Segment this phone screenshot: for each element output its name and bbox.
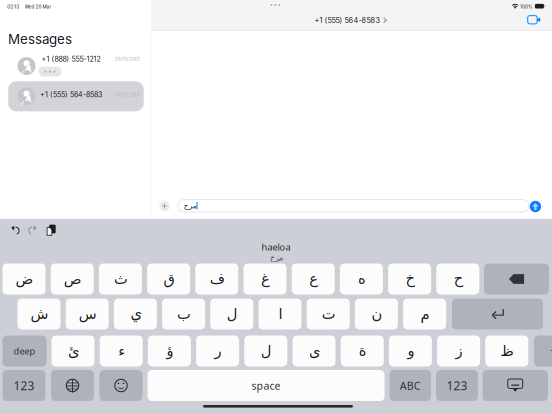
button[interactable]: ه xyxy=(340,263,383,294)
button[interactable]: ا xyxy=(258,298,301,329)
staticText: haeloa xyxy=(261,241,290,253)
staticText: 01/01/2001 xyxy=(115,56,140,62)
staticText: × xyxy=(515,270,522,286)
button[interactable]: ة xyxy=(341,335,384,366)
staticText: ر xyxy=(214,343,221,359)
button[interactable]: ع xyxy=(292,263,335,294)
staticText: 01/01/2001 xyxy=(115,91,140,98)
staticText: +1 (555) 564-8583 xyxy=(314,16,380,25)
button[interactable]: Paste xyxy=(47,225,56,236)
staticText: 100% xyxy=(520,4,533,10)
button[interactable]: ي xyxy=(114,298,157,329)
staticText: ن xyxy=(371,306,382,322)
button[interactable]: ت xyxy=(307,298,350,329)
staticText: س xyxy=(78,306,96,322)
staticText: ظ xyxy=(500,343,514,359)
button[interactable]: ز xyxy=(437,335,480,366)
staticText: مرح xyxy=(269,253,282,262)
staticText: ة xyxy=(358,343,366,359)
staticText: ه xyxy=(357,271,365,287)
button[interactable]: ل xyxy=(244,335,287,366)
staticText: ح xyxy=(453,271,462,287)
button[interactable]: ر xyxy=(196,335,239,366)
staticText: space xyxy=(251,378,280,393)
button[interactable]: ف xyxy=(195,263,238,294)
staticText: ل xyxy=(226,306,237,322)
button[interactable]: Numbers xyxy=(2,370,45,401)
button[interactable]: Send xyxy=(530,201,541,212)
staticText: +1 (888) 555-1212 xyxy=(41,55,100,63)
button[interactable]: Add attachment xyxy=(159,201,170,211)
staticText: م xyxy=(420,306,429,322)
staticText: ق xyxy=(163,271,174,287)
button[interactable]: Return xyxy=(452,298,543,329)
button[interactable]: space xyxy=(147,370,384,401)
button[interactable]: ؤ xyxy=(148,335,191,366)
staticText: Wed 20 Mar xyxy=(25,4,52,10)
staticText: ى xyxy=(308,343,319,359)
staticText: ص xyxy=(63,271,81,287)
staticText: ABC xyxy=(400,378,421,393)
button[interactable]: ث xyxy=(99,263,142,294)
button[interactable]: م xyxy=(403,298,446,329)
staticText: ز xyxy=(455,343,462,359)
staticText: ش xyxy=(30,306,48,322)
staticText: ت xyxy=(321,306,335,322)
button[interactable]: +1 (888) 555-1212 xyxy=(8,51,144,81)
button[interactable]: ظ xyxy=(485,335,528,366)
button[interactable]: ئ xyxy=(51,335,94,366)
staticText: ل xyxy=(260,343,271,359)
button[interactable]: Delete xyxy=(484,263,549,294)
staticText: ب xyxy=(177,306,191,322)
staticText: ض xyxy=(15,271,33,287)
button[interactable]: ب xyxy=(162,298,205,329)
button[interactable]: و xyxy=(389,335,432,366)
button[interactable]: ح xyxy=(436,263,479,294)
button[interactable]: FaceTime xyxy=(528,16,540,24)
staticText: ؤ xyxy=(166,343,173,359)
button[interactable]: غ xyxy=(243,263,286,294)
staticText: ئ xyxy=(67,343,78,359)
button[interactable]: Next keyboard xyxy=(51,370,94,401)
staticText: غ xyxy=(260,271,269,287)
button[interactable]: خ xyxy=(388,263,431,294)
button[interactable]: ش xyxy=(17,298,60,329)
button[interactable]: مرح xyxy=(178,200,529,212)
staticText: Messages xyxy=(8,31,72,47)
button[interactable]: Redo xyxy=(28,226,38,235)
staticText: deep xyxy=(13,345,35,357)
staticText: مرح xyxy=(183,201,196,210)
button[interactable]: ABC xyxy=(389,370,431,401)
button[interactable]: Numbers xyxy=(436,370,478,401)
staticText: 123 xyxy=(446,377,467,393)
button[interactable]: +1 (555) 564-8583 xyxy=(315,15,387,25)
staticText: 123 xyxy=(13,377,34,393)
button[interactable]: ل xyxy=(210,298,253,329)
button[interactable]: Shift xyxy=(534,335,552,366)
staticText: 02:13 xyxy=(7,4,19,10)
button[interactable]: ء xyxy=(100,335,143,366)
staticText: ف xyxy=(209,271,224,287)
staticText: و xyxy=(407,343,414,359)
button[interactable]: Undo xyxy=(10,226,20,235)
staticText: خ xyxy=(405,271,414,287)
staticText: +1 (555) 564-8583 xyxy=(40,90,102,99)
staticText: ء xyxy=(118,343,125,359)
button[interactable]: deep xyxy=(2,335,46,366)
button[interactable]: Hide keyboard xyxy=(482,370,548,401)
button[interactable]: haeloa xyxy=(252,242,300,261)
staticText: ع xyxy=(309,271,318,287)
button[interactable]: ن xyxy=(355,298,398,329)
button[interactable]: س xyxy=(66,298,109,329)
button[interactable]: ق xyxy=(147,263,190,294)
button[interactable]: ى xyxy=(292,335,335,366)
button[interactable]: ض xyxy=(2,263,45,294)
staticText: ي xyxy=(130,306,141,322)
button[interactable]: +1 (555) 564-8583 xyxy=(8,81,144,111)
staticText: ث xyxy=(113,271,127,287)
staticText: ا xyxy=(278,306,282,322)
button[interactable]: Emoji xyxy=(99,370,142,401)
button[interactable]: ص xyxy=(51,263,94,294)
